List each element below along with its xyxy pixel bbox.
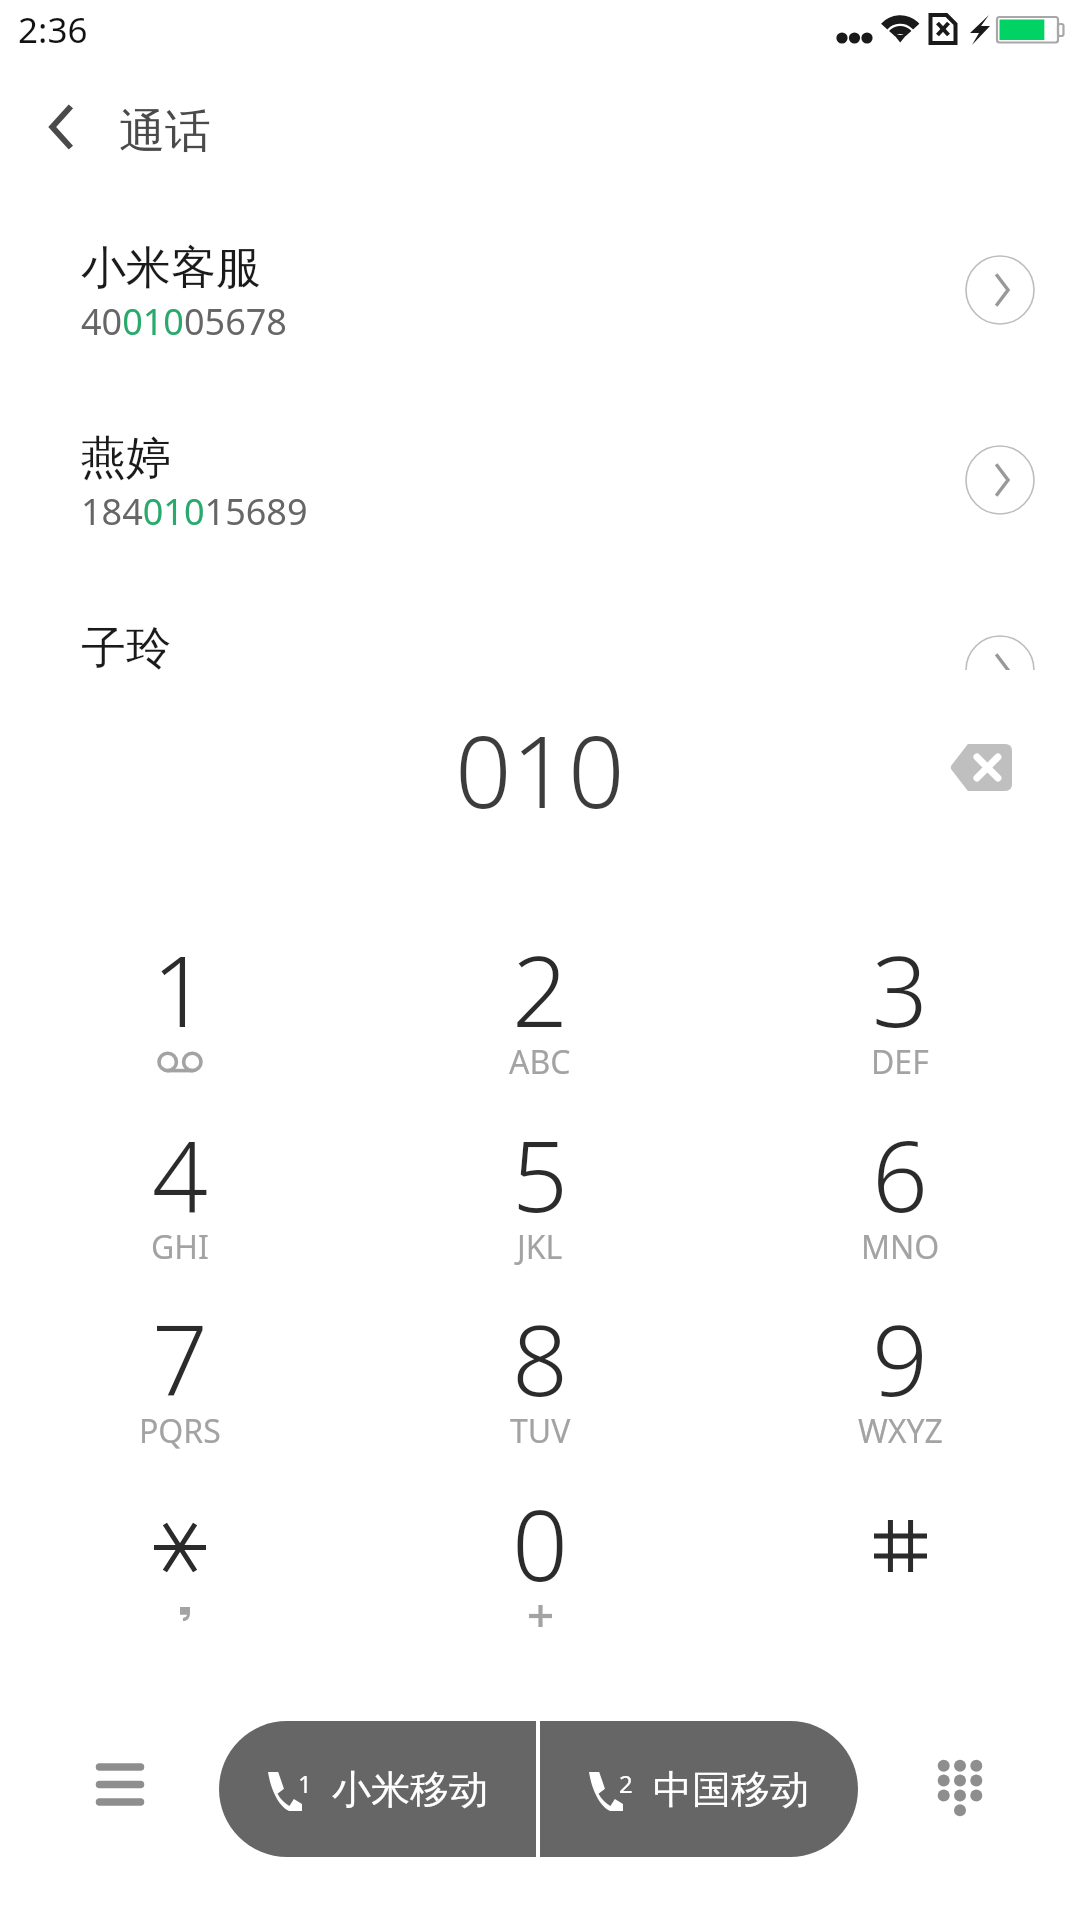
button[interactable]: Dialpad bbox=[900, 1725, 1020, 1845]
staticText: 3 bbox=[872, 922, 928, 1055]
staticText: MNO bbox=[861, 1225, 940, 1269]
button[interactable]: Pound bbox=[720, 1444, 1080, 1628]
staticText: 1 bbox=[298, 1767, 312, 1800]
staticText: TUV bbox=[510, 1409, 571, 1453]
staticText: 5 bbox=[512, 1107, 568, 1240]
staticText: WXYZ bbox=[858, 1409, 943, 1453]
button[interactable]: Back bbox=[10, 87, 112, 167]
staticText: 9 bbox=[872, 1291, 928, 1424]
button[interactable]: Star bbox=[0, 1444, 360, 1628]
button[interactable]: Key 1 bbox=[0, 890, 360, 1074]
staticText: 2:36 bbox=[18, 6, 88, 54]
button[interactable]: Key 0 bbox=[360, 1444, 720, 1628]
button[interactable]: Key 8 bbox=[360, 1259, 720, 1443]
staticText: 6 bbox=[872, 1107, 928, 1240]
staticText: 小米移动 bbox=[332, 1765, 488, 1814]
staticText: 8 bbox=[512, 1291, 568, 1424]
button[interactable]: Key 4 bbox=[0, 1075, 360, 1259]
button[interactable]: Backspace bbox=[918, 715, 1042, 819]
button[interactable]: 子玲 bbox=[0, 618, 1080, 670]
staticText: 4 bbox=[152, 1107, 208, 1240]
staticText: 子玲 bbox=[81, 620, 171, 670]
staticText: 4001005678 bbox=[81, 297, 287, 346]
staticText: 2 bbox=[619, 1767, 633, 1800]
staticText: 1 bbox=[152, 922, 208, 1055]
staticText: 010 bbox=[455, 702, 625, 837]
staticText: 0 bbox=[512, 1476, 568, 1609]
button[interactable]: Key 6 bbox=[720, 1075, 1080, 1259]
button[interactable]: 2 bbox=[540, 1721, 858, 1857]
button[interactable]: Call log bbox=[60, 1725, 180, 1845]
button[interactable]: 1 bbox=[219, 1721, 536, 1857]
staticText: 中国移动 bbox=[653, 1765, 809, 1814]
staticText: JKL bbox=[517, 1225, 563, 1269]
staticText: 18401015689 bbox=[81, 487, 308, 536]
staticText: 2 bbox=[512, 922, 568, 1055]
button[interactable]: Key 5 bbox=[360, 1075, 720, 1259]
button[interactable]: Key 9 bbox=[720, 1259, 1080, 1443]
staticText: PQRS bbox=[139, 1409, 221, 1453]
staticText: 燕婷 bbox=[81, 430, 171, 487]
button[interactable]: 燕婷 bbox=[0, 428, 1080, 618]
staticText: 通话 bbox=[119, 103, 211, 161]
staticText: DEF bbox=[871, 1040, 929, 1084]
staticText: 7 bbox=[152, 1291, 208, 1424]
button[interactable]: Key 3 bbox=[720, 890, 1080, 1074]
staticText: GHI bbox=[151, 1225, 209, 1269]
button[interactable]: Key 7 bbox=[0, 1259, 360, 1443]
button[interactable]: Key 2 bbox=[360, 890, 720, 1074]
staticText: 小米客服 bbox=[81, 240, 261, 297]
staticText: ABC bbox=[509, 1040, 571, 1084]
button[interactable]: 小米客服 bbox=[0, 238, 1080, 428]
